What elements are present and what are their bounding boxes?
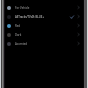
button[interactable]: Red — [0, 21, 88, 30]
button[interactable]: Accented — [0, 39, 88, 48]
other: Open — [77, 15, 80, 18]
staticText: Red — [15, 24, 21, 28]
staticText: AllTracks/TVdX: BLUE+ — [15, 15, 44, 19]
other: Open — [77, 24, 80, 27]
staticText: Dark — [15, 33, 22, 37]
staticText: Accented — [15, 42, 28, 46]
other: Open — [77, 42, 80, 45]
button[interactable]: AllTracks/TVdX: BLUE+ — [0, 12, 88, 21]
other: Open — [77, 33, 80, 36]
other: Selected — [70, 15, 74, 19]
button[interactable]: Dark — [0, 30, 88, 39]
staticText: For Vehicle — [15, 6, 30, 10]
other: Open — [77, 6, 80, 9]
button[interactable]: For Vehicle — [0, 3, 88, 12]
